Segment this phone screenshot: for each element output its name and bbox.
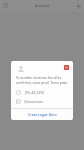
button[interactable]: Add [73,1,83,11]
staticText: To acceder tenemos fan all'es de me con … [16,75,68,79]
staticText: JFK+48,3256 [24,90,45,95]
button[interactable]: Menu [1,1,10,10]
button[interactable]: Ubicaciones [11,97,73,106]
button[interactable]: JFK+48,3256 [11,88,73,97]
staticText: confirmar, crear prod. Tiene pista [16,80,68,84]
staticText: Crear Lugar Itino [28,112,57,117]
button[interactable]: Alert [64,65,69,70]
staticText: Ubicaciones [24,99,44,104]
staticText: Android [35,3,49,8]
button[interactable]: Crear Lugar Itino [11,109,73,120]
